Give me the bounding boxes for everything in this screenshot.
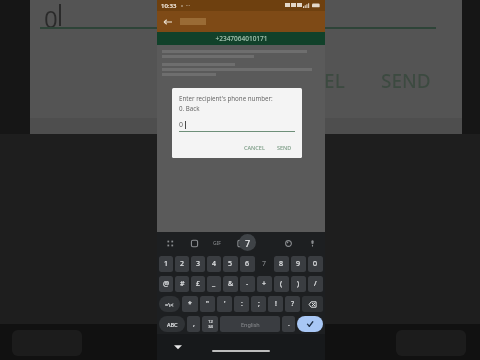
- staticText: #: [180, 279, 185, 289]
- staticText: 5: [228, 259, 233, 269]
- staticText: :: [241, 299, 243, 309]
- button[interactable]: Stickers: [233, 236, 247, 250]
- staticText: +: [262, 279, 267, 289]
- button[interactable]: ,: [187, 316, 200, 332]
- staticText: ,: [193, 319, 195, 329]
- staticText: &: [228, 279, 234, 289]
- button[interactable]: :: [234, 296, 249, 312]
- staticText: ": [206, 299, 209, 309]
- staticText: ···: [186, 2, 191, 9]
- button[interactable]: CANCEL: [241, 143, 268, 152]
- staticText: £: [196, 279, 201, 289]
- staticText: 0: [313, 259, 318, 269]
- staticText: =\<: [165, 301, 174, 308]
- button[interactable]: #: [175, 276, 189, 292]
- staticText: _: [212, 279, 216, 289]
- button[interactable]: GIF: [211, 238, 223, 249]
- button[interactable]: 1: [159, 256, 173, 272]
- staticText: 7: [245, 237, 251, 249]
- button[interactable]: Navigate up: [162, 16, 174, 28]
- button[interactable]: Clipboard: [187, 236, 201, 250]
- button[interactable]: 6: [240, 256, 255, 272]
- button[interactable]: -: [240, 276, 255, 292]
- staticText: -: [246, 279, 249, 289]
- button[interactable]: =\<: [159, 296, 180, 312]
- button[interactable]: 0: [308, 256, 323, 272]
- staticText: !: [275, 299, 277, 309]
- button[interactable]: 2: [175, 256, 189, 272]
- staticText: 0. Back: [179, 104, 200, 112]
- staticText: .: [288, 319, 290, 329]
- button[interactable]: Themes: [281, 236, 295, 250]
- staticText: CEL: [312, 68, 345, 94]
- staticText: SEND: [277, 144, 292, 151]
- button[interactable]: 4: [207, 256, 221, 272]
- button[interactable]: £: [191, 276, 205, 292]
- staticText: GIF: [213, 240, 221, 247]
- staticText: 9: [296, 259, 301, 269]
- staticText: @: [163, 279, 170, 289]
- staticText: 6: [245, 259, 250, 269]
- staticText: 4: [212, 259, 217, 269]
- staticText: 7: [262, 259, 267, 269]
- staticText: Enter recipient's phone number:: [179, 94, 273, 102]
- button[interactable]: ?: [285, 296, 300, 312]
- button[interactable]: Voice input: [305, 236, 319, 250]
- button[interactable]: (: [274, 276, 289, 292]
- button[interactable]: 5: [223, 256, 238, 272]
- button[interactable]: &: [223, 276, 238, 292]
- staticText: English: [241, 321, 260, 328]
- staticText: SEND: [381, 68, 431, 94]
- staticText: CANCEL: [244, 144, 265, 151]
- staticText: 1: [164, 259, 169, 269]
- staticText: 0: [44, 2, 58, 35]
- staticText: 8: [279, 259, 284, 269]
- button[interactable]: 3: [191, 256, 205, 272]
- staticText: 12 34: [208, 319, 213, 329]
- button[interactable]: .: [282, 316, 295, 332]
- staticText: /: [314, 279, 317, 289]
- button[interactable]: !: [268, 296, 283, 312]
- staticText: (: [280, 279, 283, 289]
- button[interactable]: ): [291, 276, 306, 292]
- staticText: ): [297, 279, 300, 289]
- staticText: ?: [291, 299, 295, 309]
- button[interactable]: @: [159, 276, 173, 292]
- staticText: 2: [180, 259, 185, 269]
- button[interactable]: 9: [291, 256, 306, 272]
- button[interactable]: Backspace: [302, 296, 323, 312]
- staticText: 0: [179, 120, 184, 130]
- button[interactable]: _: [207, 276, 221, 292]
- button[interactable]: 7: [257, 256, 272, 272]
- button[interactable]: *: [182, 296, 198, 312]
- button[interactable]: ": [200, 296, 215, 312]
- button[interactable]: +: [257, 276, 272, 292]
- button[interactable]: English: [220, 316, 280, 332]
- button[interactable]: /: [308, 276, 323, 292]
- button[interactable]: Symbols: [202, 316, 218, 332]
- button[interactable]: ;: [251, 296, 266, 312]
- button[interactable]: 8: [274, 256, 289, 272]
- button[interactable]: SEND: [274, 143, 295, 152]
- staticText: ABC: [167, 321, 178, 328]
- button[interactable]: Hide keyboard: [171, 340, 185, 354]
- staticText: 3: [196, 259, 201, 269]
- staticText: ': [224, 299, 226, 309]
- staticText: *: [188, 299, 192, 309]
- staticText: +2347064010171: [215, 34, 268, 43]
- staticText: ;: [258, 299, 260, 309]
- button[interactable]: Enter: [297, 316, 323, 332]
- staticText: 10:33: [161, 2, 177, 10]
- button[interactable]: ABC: [159, 316, 185, 332]
- button[interactable]: Keyboard layouts: [163, 236, 177, 250]
- button[interactable]: ': [217, 296, 232, 312]
